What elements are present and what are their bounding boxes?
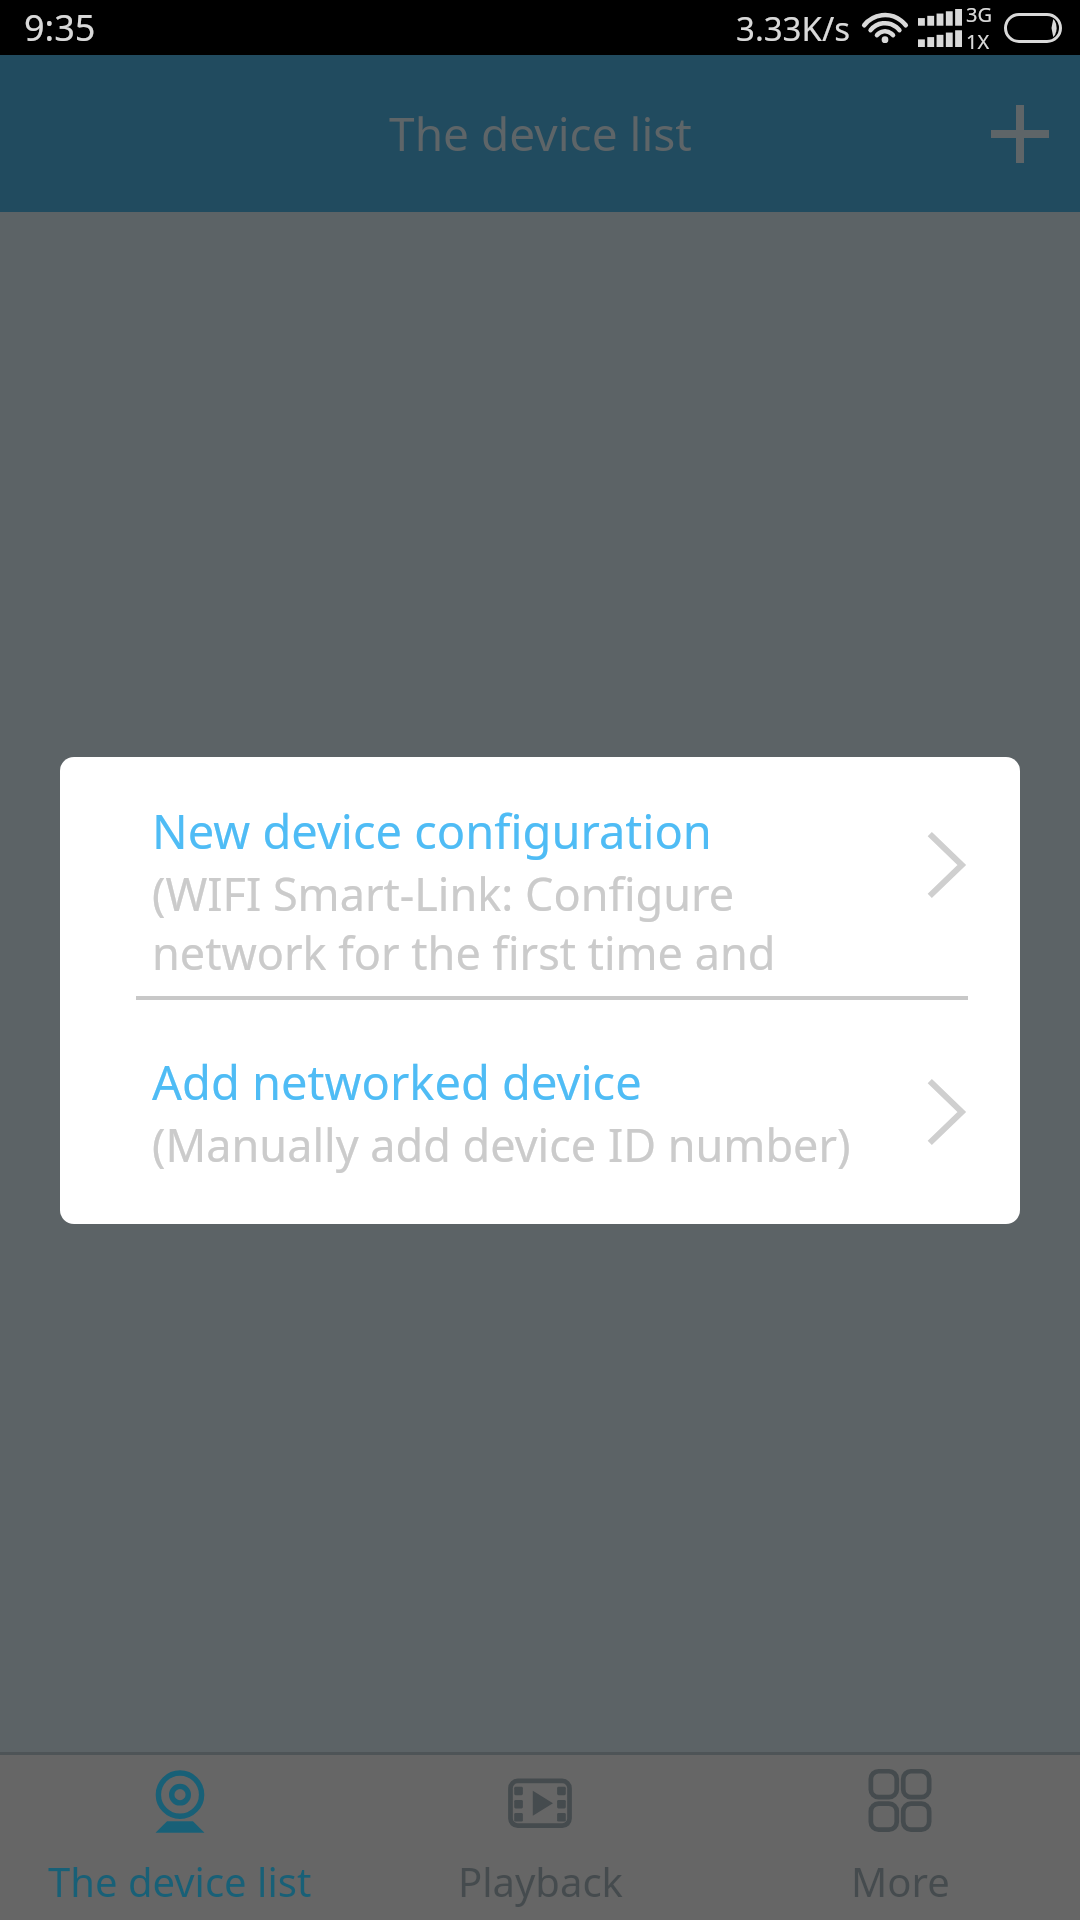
staticText: More [851, 1854, 950, 1908]
staticText: The device list [389, 102, 692, 165]
button[interactable]: Add networked device [60, 1000, 1020, 1224]
staticText: (WIFI Smart-Link: Configure network for … [152, 863, 872, 983]
staticText: 3.33K/s [736, 6, 850, 51]
staticText: Add networked device [152, 1050, 642, 1114]
button[interactable]: More [720, 1755, 1080, 1920]
staticText: (Manually add device ID number) [152, 1114, 851, 1175]
staticText: 9:35 [24, 3, 96, 52]
staticText: 3G [966, 1, 992, 28]
button[interactable]: Add device [974, 88, 1066, 180]
button[interactable]: New device configuration [60, 757, 1020, 996]
button[interactable]: The device list [0, 1755, 360, 1920]
staticText: 1X [966, 28, 990, 55]
staticText: Playback [458, 1854, 623, 1908]
staticText: The device list [48, 1854, 312, 1908]
staticText: New device configuration [152, 799, 712, 863]
button[interactable]: Playback [360, 1755, 720, 1920]
